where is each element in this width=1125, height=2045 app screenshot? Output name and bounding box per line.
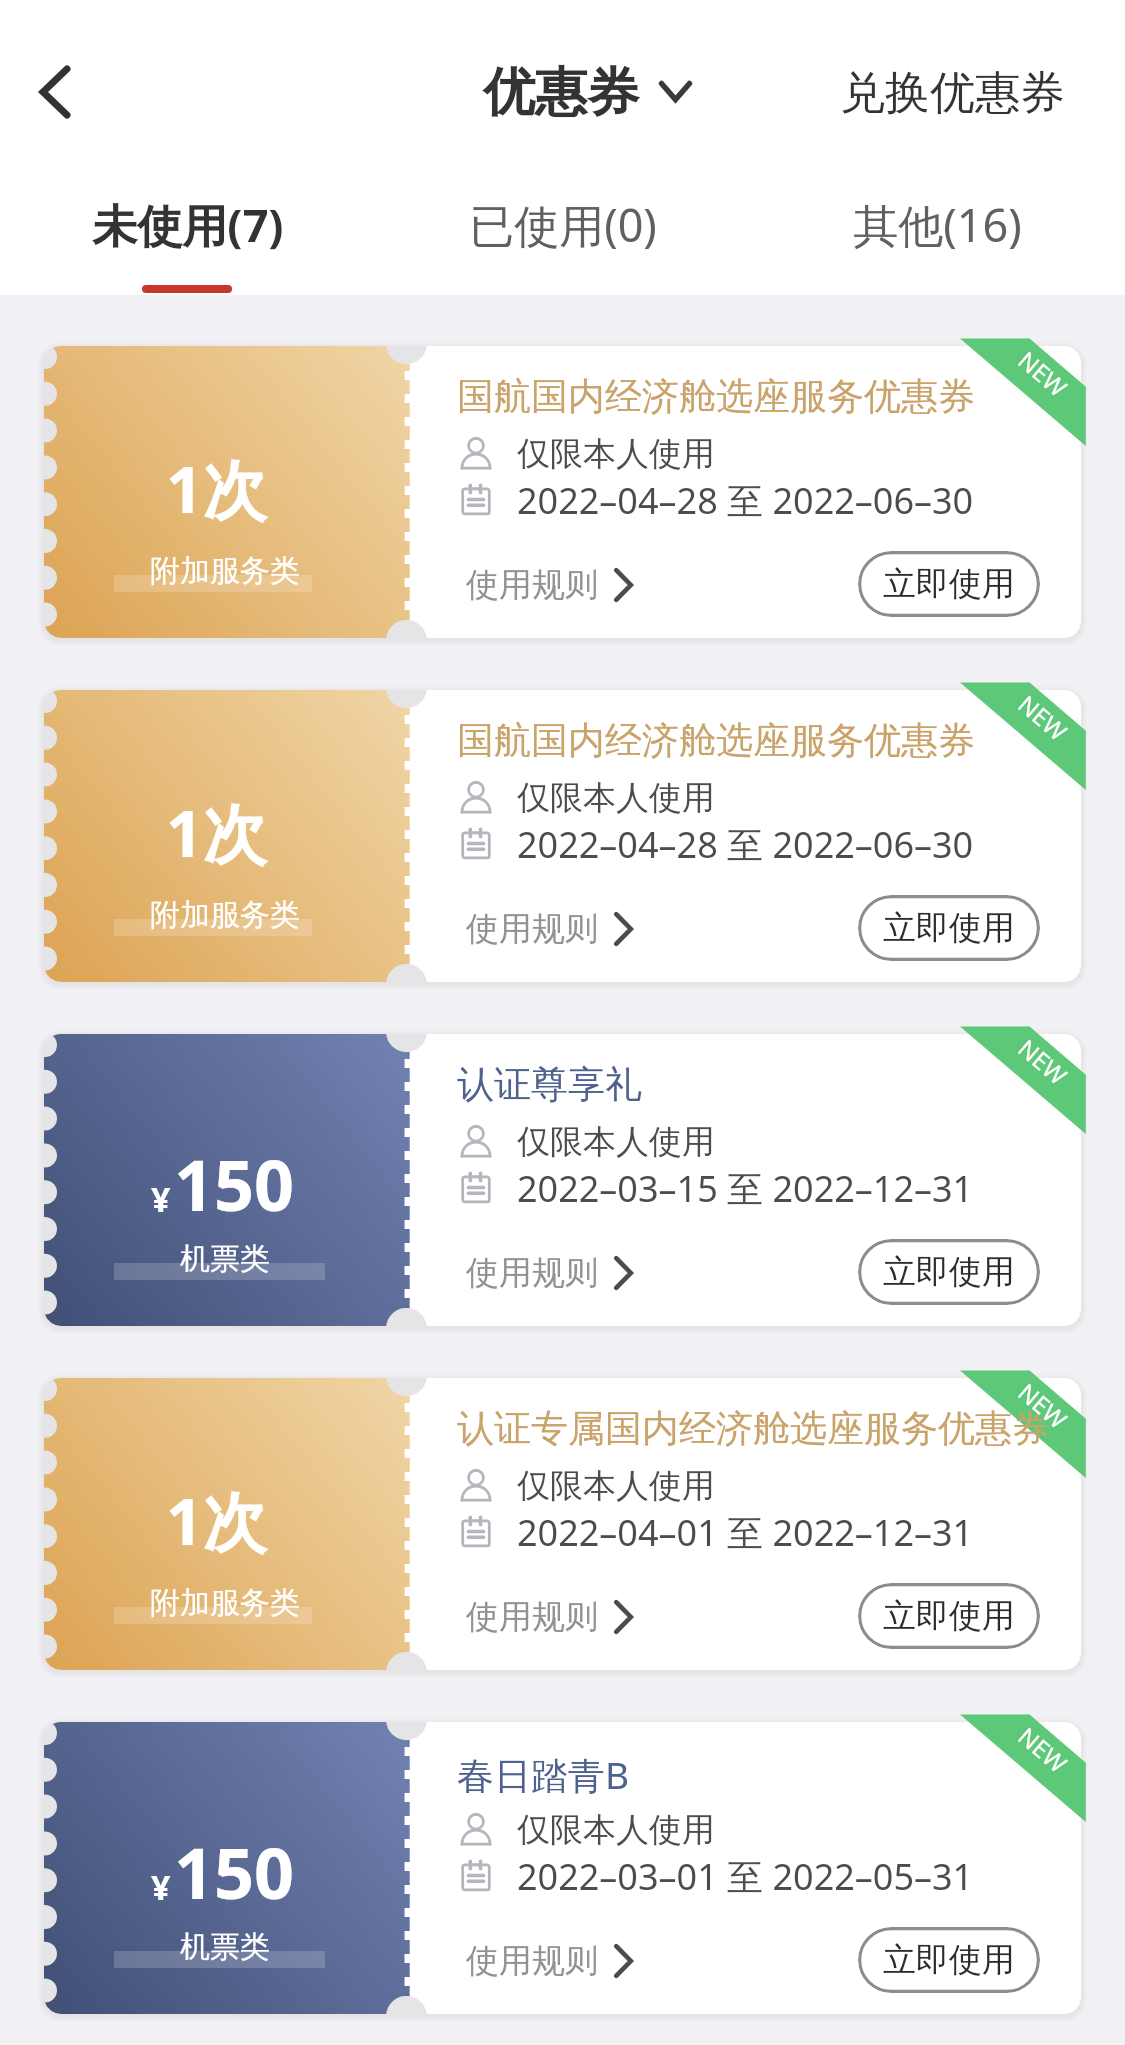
staticText: 使用规则 — [466, 1252, 598, 1294]
staticText: 附加服务类 — [150, 896, 300, 934]
staticText: 2022–04–28 至 2022–06–30 — [517, 476, 974, 525]
button[interactable]: 立即使用 — [858, 1239, 1040, 1305]
staticText: 春日踏青B — [457, 1749, 1067, 1800]
staticText: 仅限本人使用 — [517, 1465, 715, 1507]
staticText: 2022–04–01 至 2022–12–31 — [517, 1508, 974, 1557]
staticText: 立即使用 — [883, 563, 1015, 605]
button[interactable]: 未使用(7) — [0, 175, 375, 295]
staticText: 仅限本人使用 — [517, 1121, 715, 1163]
button[interactable]: 使用规则 — [466, 559, 633, 611]
button[interactable]: 立即使用 — [858, 1583, 1040, 1649]
button[interactable]: 已使用(0) — [375, 175, 750, 295]
button[interactable]: 使用规则 — [466, 1591, 633, 1643]
staticText: ¥ — [151, 1864, 177, 1910]
staticText: 机票类 — [180, 1240, 270, 1278]
staticText: 2022–03–01 至 2022–05–31 — [517, 1852, 974, 1901]
button[interactable]: 认证专属国内经济舱选座服务优惠券 — [0, 1378, 1125, 1670]
button[interactable]: 春日踏青B — [0, 1722, 1125, 2014]
staticText: 立即使用 — [883, 1939, 1015, 1981]
button[interactable]: 国航国内经济舱选座服务优惠券 — [0, 690, 1125, 982]
staticText: 使用规则 — [466, 908, 598, 950]
staticText: NEW — [1012, 1375, 1074, 1436]
button[interactable]: 立即使用 — [858, 551, 1040, 617]
staticText: 1次 — [166, 445, 267, 532]
button[interactable]: 国航国内经济舱选座服务优惠券 — [0, 346, 1125, 638]
staticText: ¥ — [151, 1176, 177, 1222]
staticText: NEW — [1012, 687, 1074, 748]
staticText: 认证专属国内经济舱选座服务优惠券 — [457, 1405, 1067, 1452]
button[interactable]: 使用规则 — [466, 903, 633, 955]
staticText: 机票类 — [180, 1928, 270, 1966]
staticText: 兑换优惠券 — [840, 65, 1065, 122]
staticText: NEW — [1012, 1719, 1074, 1780]
staticText: 仅限本人使用 — [517, 433, 715, 475]
staticText: 已使用(0) — [469, 194, 657, 255]
staticText: 国航国内经济舱选座服务优惠券 — [457, 373, 1067, 420]
staticText: 使用规则 — [466, 1596, 598, 1638]
staticText: 仅限本人使用 — [517, 777, 715, 819]
button[interactable]: 立即使用 — [858, 895, 1040, 961]
button[interactable]: 兑换优惠券 — [840, 65, 1065, 122]
staticText: 国航国内经济舱选座服务优惠券 — [457, 717, 1067, 764]
button[interactable]: 优惠券 切换类型 — [400, 52, 730, 122]
button[interactable]: 使用规则 — [466, 1935, 633, 1987]
staticText: 未使用(7) — [92, 194, 284, 255]
staticText: 仅限本人使用 — [517, 1809, 715, 1851]
button[interactable]: 认证尊享礼 — [0, 1034, 1125, 1326]
staticText: 1次 — [166, 789, 267, 876]
staticText: 附加服务类 — [150, 552, 300, 590]
staticText: 优惠券 — [483, 60, 639, 126]
button[interactable]: 立即使用 — [858, 1927, 1040, 1993]
staticText: 使用规则 — [466, 564, 598, 606]
staticText: 1次 — [166, 1477, 267, 1564]
button[interactable]: Back — [13, 50, 97, 134]
staticText: 认证尊享礼 — [457, 1061, 1067, 1108]
staticText: 其他(16) — [853, 194, 1022, 255]
staticText: 附加服务类 — [150, 1584, 300, 1622]
staticText: 立即使用 — [883, 907, 1015, 949]
staticText: 2022–04–28 至 2022–06–30 — [517, 820, 974, 869]
staticText: NEW — [1012, 343, 1074, 404]
staticText: 150 — [174, 1824, 295, 1919]
staticText: 立即使用 — [883, 1251, 1015, 1293]
staticText: NEW — [1012, 1031, 1074, 1092]
staticText: 150 — [174, 1136, 295, 1231]
button[interactable]: 使用规则 — [466, 1247, 633, 1299]
staticText: 2022–03–15 至 2022–12–31 — [517, 1164, 974, 1213]
staticText: 立即使用 — [883, 1595, 1015, 1637]
button[interactable]: 其他(16) — [750, 175, 1125, 295]
staticText: 使用规则 — [466, 1940, 598, 1982]
